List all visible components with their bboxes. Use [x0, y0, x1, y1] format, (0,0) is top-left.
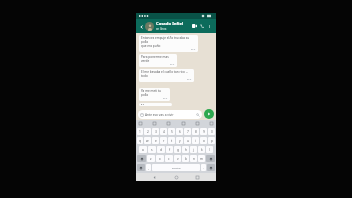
button[interactable]: 3 [152, 128, 159, 135]
button[interactable]: n [190, 155, 197, 162]
staticText: 0 [211, 130, 213, 134]
staticText: 6 [179, 130, 181, 134]
button[interactable]: j [190, 146, 197, 153]
button[interactable]: b [182, 155, 189, 162]
staticText: v [177, 157, 179, 161]
button[interactable]: m [198, 155, 205, 162]
staticText: h [185, 148, 187, 152]
staticText: 1 [139, 130, 141, 134]
button[interactable]: Keyboard tool 6 [209, 121, 214, 126]
staticText: e [155, 139, 157, 143]
staticText: 21:4 [191, 48, 196, 51]
button[interactable]: c [165, 155, 173, 162]
button[interactable]: 9 [200, 128, 207, 135]
staticText: 5 [171, 130, 173, 134]
button[interactable]: 4 [160, 128, 167, 135]
button[interactable]: Back [136, 19, 216, 33]
button[interactable]: z [147, 155, 155, 162]
staticText: q [139, 139, 141, 143]
staticText: 8 [195, 130, 197, 134]
button[interactable]: Backspace [206, 155, 215, 162]
staticText: 21:4 [163, 97, 168, 100]
staticText: m [200, 157, 203, 161]
staticText: t [171, 139, 173, 143]
staticText: 2 [147, 130, 149, 134]
button[interactable]: Entonces empuje el/la trucaba su polla q… [139, 35, 198, 52]
button[interactable]: Keyboard tool 3 [166, 121, 171, 126]
staticText: o [203, 139, 205, 143]
staticText: . [203, 166, 204, 170]
button[interactable]: r [160, 137, 167, 144]
button[interactable]: k [198, 146, 205, 153]
button[interactable]: Enter [207, 164, 215, 171]
button[interactable]: Ya me meti tu polla [139, 88, 170, 101]
staticText: b [185, 157, 187, 161]
staticText: f [169, 148, 171, 152]
button[interactable]: 6 [176, 128, 183, 135]
button[interactable]: Keyboard tool 1 [138, 121, 143, 126]
staticText: w [146, 139, 149, 143]
staticText: Español [172, 166, 181, 169]
button[interactable]: Recent apps [194, 174, 201, 181]
button[interactable]: 2 [144, 128, 151, 135]
button[interactable]: Ante eso vas a vivir [138, 110, 202, 119]
button[interactable]: Me empezo a mover [139, 103, 172, 106]
button[interactable]: 7 [184, 128, 191, 135]
staticText: z [150, 157, 152, 161]
button[interactable]: Back [151, 174, 158, 181]
button[interactable]: . [201, 164, 206, 171]
button[interactable]: El me besaba el cuello tan rico ... todo [139, 69, 194, 82]
staticText: 21:4 [187, 78, 192, 81]
button[interactable]: Keyboard tool 4 [181, 121, 186, 126]
staticText: k [201, 148, 203, 152]
button[interactable]: l [206, 146, 213, 153]
button[interactable]: u [184, 137, 191, 144]
button[interactable]: 8 [192, 128, 199, 135]
button[interactable]: 5 [168, 128, 175, 135]
staticText: 21:4 [170, 63, 175, 66]
button[interactable]: v [174, 155, 181, 162]
button[interactable]: 1 [137, 128, 143, 135]
staticText: x [159, 157, 161, 161]
button[interactable]: e [152, 137, 159, 144]
button[interactable]: y [176, 137, 183, 144]
button[interactable]: Video call [190, 22, 198, 30]
button[interactable]: , [146, 164, 151, 171]
staticText: j [193, 148, 194, 152]
button[interactable]: x [156, 155, 164, 162]
button[interactable]: Symbols [137, 164, 145, 171]
button[interactable]: g [174, 146, 181, 153]
staticText: a [142, 148, 144, 152]
staticText: c [168, 157, 170, 161]
button[interactable]: Keyboard tool 5 [195, 121, 200, 126]
button[interactable]: More options [206, 23, 213, 30]
staticText: 4 [163, 130, 165, 134]
staticText: u [187, 139, 189, 143]
button[interactable]: Keyboard tool 2 [152, 121, 157, 126]
button[interactable]: s [148, 146, 156, 153]
button[interactable]: h [182, 146, 189, 153]
button[interactable]: a [139, 146, 147, 153]
button[interactable]: Call [198, 22, 206, 30]
button[interactable]: Para ponerme mas verde [139, 54, 177, 67]
staticText: 7 [187, 130, 189, 134]
button[interactable]: p [208, 137, 215, 144]
button[interactable]: Send [204, 109, 214, 119]
staticText: y [179, 139, 181, 143]
button[interactable]: Profile photo [145, 22, 154, 31]
button[interactable]: f [166, 146, 173, 153]
button[interactable]: Shift [137, 155, 146, 162]
staticText: n [193, 157, 195, 161]
button[interactable]: Space [152, 164, 200, 171]
button[interactable]: t [168, 137, 175, 144]
button[interactable]: o [200, 137, 207, 144]
button[interactable]: q [137, 137, 143, 144]
button[interactable]: Home [173, 174, 180, 181]
staticText: d [160, 148, 162, 152]
button[interactable]: i [192, 137, 199, 144]
button[interactable]: 0 [208, 128, 215, 135]
staticText: , [148, 166, 149, 170]
button[interactable]: Back [138, 23, 145, 30]
button[interactable]: w [144, 137, 151, 144]
button[interactable]: d [157, 146, 165, 153]
